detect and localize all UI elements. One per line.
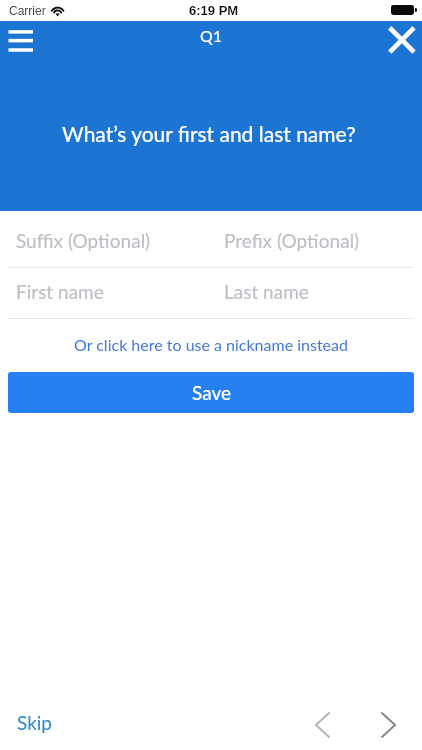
- button[interactable]: Last name: [211, 268, 422, 318]
- staticText: Save: [192, 381, 231, 404]
- button[interactable]: Suffix (Optional): [0, 217, 211, 267]
- button[interactable]: Save: [8, 372, 414, 413]
- staticText: Suffix (Optional): [16, 229, 151, 252]
- button[interactable]: Prefix (Optional): [211, 217, 422, 267]
- button[interactable]: Previous: [300, 703, 344, 747]
- button[interactable]: First name: [0, 268, 211, 318]
- button[interactable]: Close: [374, 21, 422, 64]
- staticText: Last name: [224, 280, 309, 303]
- staticText: Carrier: [9, 4, 46, 17]
- button[interactable]: Menu: [0, 21, 42, 64]
- staticText: Skip: [17, 711, 53, 734]
- staticText: 6:19 PM: [189, 3, 239, 18]
- staticText: First name: [16, 280, 104, 303]
- button[interactable]: Next: [366, 703, 410, 747]
- button[interactable]: Skip: [17, 711, 53, 734]
- staticText: Or click here to use a nickname instead: [74, 335, 348, 354]
- staticText: Q1: [200, 26, 223, 45]
- staticText: Prefix (Optional): [224, 229, 360, 252]
- staticText: What’s your first and last name?: [62, 121, 356, 146]
- button[interactable]: Or click here to use a nickname instead: [0, 319, 422, 372]
